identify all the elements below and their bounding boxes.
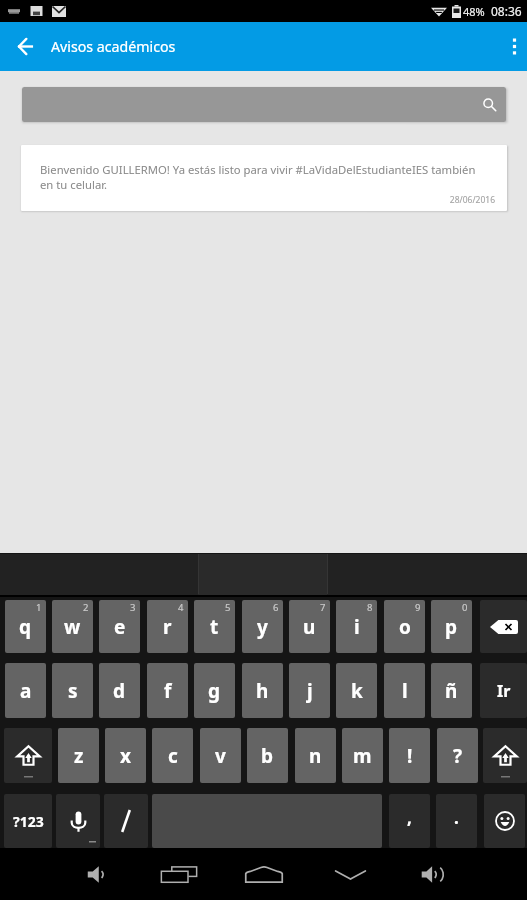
staticText: l xyxy=(402,678,408,704)
staticText: h xyxy=(256,678,269,704)
staticText: b xyxy=(261,743,274,769)
staticText: e xyxy=(114,614,126,640)
staticText: 8 xyxy=(367,601,373,614)
staticText: w xyxy=(64,614,81,640)
button[interactable]: ? xyxy=(437,728,478,783)
button[interactable]: w xyxy=(52,600,93,653)
button[interactable]: h xyxy=(242,663,283,718)
staticText: 6 xyxy=(273,601,279,614)
staticText: 5 xyxy=(225,601,231,614)
button[interactable]: n xyxy=(295,728,336,783)
staticText: 08:36 xyxy=(491,3,522,19)
button[interactable]: p xyxy=(431,600,472,653)
button[interactable]: Shift xyxy=(483,728,527,783)
button[interactable]: Volume up xyxy=(409,848,455,900)
button[interactable]: Emoji xyxy=(484,794,525,848)
staticText: z xyxy=(74,743,84,769)
staticText: d xyxy=(113,678,126,704)
staticText: 2 xyxy=(83,601,89,614)
staticText: m xyxy=(353,743,372,769)
staticText: ñ xyxy=(445,678,458,704)
button[interactable]: c xyxy=(152,728,193,783)
staticText: a xyxy=(20,678,32,704)
button[interactable]: b xyxy=(247,728,288,783)
button[interactable]: i xyxy=(336,600,377,653)
staticText: s xyxy=(68,678,78,704)
button[interactable]: Hide keyboard xyxy=(327,848,373,900)
button[interactable]: q xyxy=(5,600,46,653)
staticText: ?123 xyxy=(13,812,44,831)
button[interactable]: t xyxy=(194,600,235,653)
staticText: Ir xyxy=(497,680,511,702)
button[interactable]: Slash xyxy=(104,794,148,848)
staticText: Bienvenido GUILLERMO! Ya estás listo par… xyxy=(40,162,488,192)
button[interactable]: Volume down xyxy=(73,848,119,900)
staticText: 9 xyxy=(415,601,421,614)
button[interactable]: s xyxy=(52,663,93,718)
staticText: j xyxy=(307,678,313,704)
button[interactable]: Ir xyxy=(480,663,527,718)
button[interactable]: d xyxy=(99,663,140,718)
staticText: p xyxy=(445,614,458,640)
button[interactable]: o xyxy=(384,600,425,653)
staticText: , xyxy=(407,806,412,829)
button[interactable]: Shift xyxy=(4,728,52,783)
staticText: ? xyxy=(453,743,463,769)
button[interactable]: Comma xyxy=(389,794,430,848)
button[interactable]: Backspace xyxy=(480,600,527,653)
staticText: 0 xyxy=(462,601,468,614)
button[interactable]: f xyxy=(147,663,188,718)
staticText: 28/06/2016 xyxy=(21,194,495,206)
button[interactable]: k xyxy=(336,663,377,718)
staticText: 3 xyxy=(130,601,136,614)
button[interactable]: Symbols xyxy=(4,794,52,848)
button[interactable]: r xyxy=(147,600,188,653)
button[interactable]: More options xyxy=(500,33,527,60)
staticText: u xyxy=(303,614,316,640)
button[interactable]: Bienvenido GUILLERMO! Ya estás listo par… xyxy=(21,145,507,211)
button[interactable]: m xyxy=(342,728,383,783)
staticText: v xyxy=(215,743,226,769)
staticText: 1 xyxy=(36,601,42,614)
button[interactable]: Period xyxy=(436,794,477,848)
staticText: o xyxy=(399,614,411,640)
button[interactable]: ! xyxy=(389,728,430,783)
staticText: i xyxy=(354,614,360,640)
staticText: 7 xyxy=(320,601,326,614)
button[interactable]: z xyxy=(58,728,99,783)
staticText: c xyxy=(168,743,178,769)
button[interactable]: Voice input xyxy=(56,794,100,848)
staticText: t xyxy=(210,614,219,640)
staticText: y xyxy=(257,614,268,640)
button[interactable]: a xyxy=(5,663,46,718)
staticText: 48% xyxy=(463,4,485,19)
button[interactable]: l xyxy=(384,663,425,718)
staticText: n xyxy=(309,743,322,769)
button[interactable]: g xyxy=(194,663,235,718)
button[interactable]: Home xyxy=(241,848,287,900)
staticText: g xyxy=(208,678,221,704)
staticText: k xyxy=(351,678,363,704)
button[interactable]: e xyxy=(99,600,140,653)
button[interactable]: y xyxy=(242,600,283,653)
button[interactable]: Recents xyxy=(156,848,202,900)
staticText: ! xyxy=(407,743,413,769)
staticText: . xyxy=(454,806,459,829)
staticText: Avisos académicos xyxy=(51,37,176,56)
button[interactable] xyxy=(22,87,506,122)
staticText: 4 xyxy=(178,601,184,614)
staticText: f xyxy=(164,678,172,704)
button[interactable]: ñ xyxy=(431,663,472,718)
button[interactable]: x xyxy=(105,728,146,783)
button[interactable]: u xyxy=(289,600,330,653)
button[interactable]: j xyxy=(289,663,330,718)
button[interactable]: Back xyxy=(15,36,36,57)
button[interactable]: v xyxy=(200,728,241,783)
staticText: x xyxy=(120,743,131,769)
staticText: q xyxy=(19,614,32,640)
staticText: r xyxy=(163,614,172,640)
